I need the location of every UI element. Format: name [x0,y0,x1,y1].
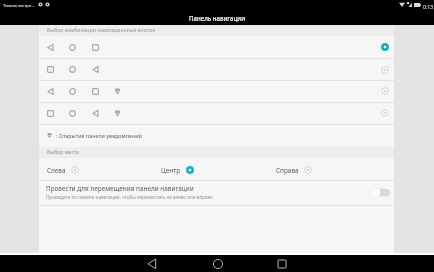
staticText: Справа [276,166,299,175]
button[interactable]: Справа [272,159,316,181]
staticText: Центр [161,166,181,175]
button[interactable]: Слева [43,159,83,181]
staticText: Панель навигации [189,14,245,22]
staticText: : Открытие панели уведомлений [56,132,142,139]
staticText: Только экстре… [3,3,35,9]
button[interactable]: Назад [129,256,175,272]
button[interactable] [39,180,394,205]
staticText: Проведите по панели навигации, чтобы пер… [46,194,213,200]
button[interactable] [39,103,394,125]
button[interactable]: Недавние приложения [259,256,305,272]
staticText: Выбор комбинации навигационных кнопок [47,27,156,34]
button[interactable] [39,81,394,103]
staticText: Провести для перемещения панели навигаци… [46,184,194,193]
button[interactable]: Главный экран [195,256,241,272]
button[interactable]: Провести для перемещения панели навигаци… [370,186,392,199]
button[interactable] [39,36,394,58]
staticText: Выбор места [47,149,80,156]
staticText: 0:13 [423,3,434,10]
button[interactable] [39,59,394,81]
button[interactable]: Центр [157,159,198,181]
staticText: Слева [47,166,66,175]
